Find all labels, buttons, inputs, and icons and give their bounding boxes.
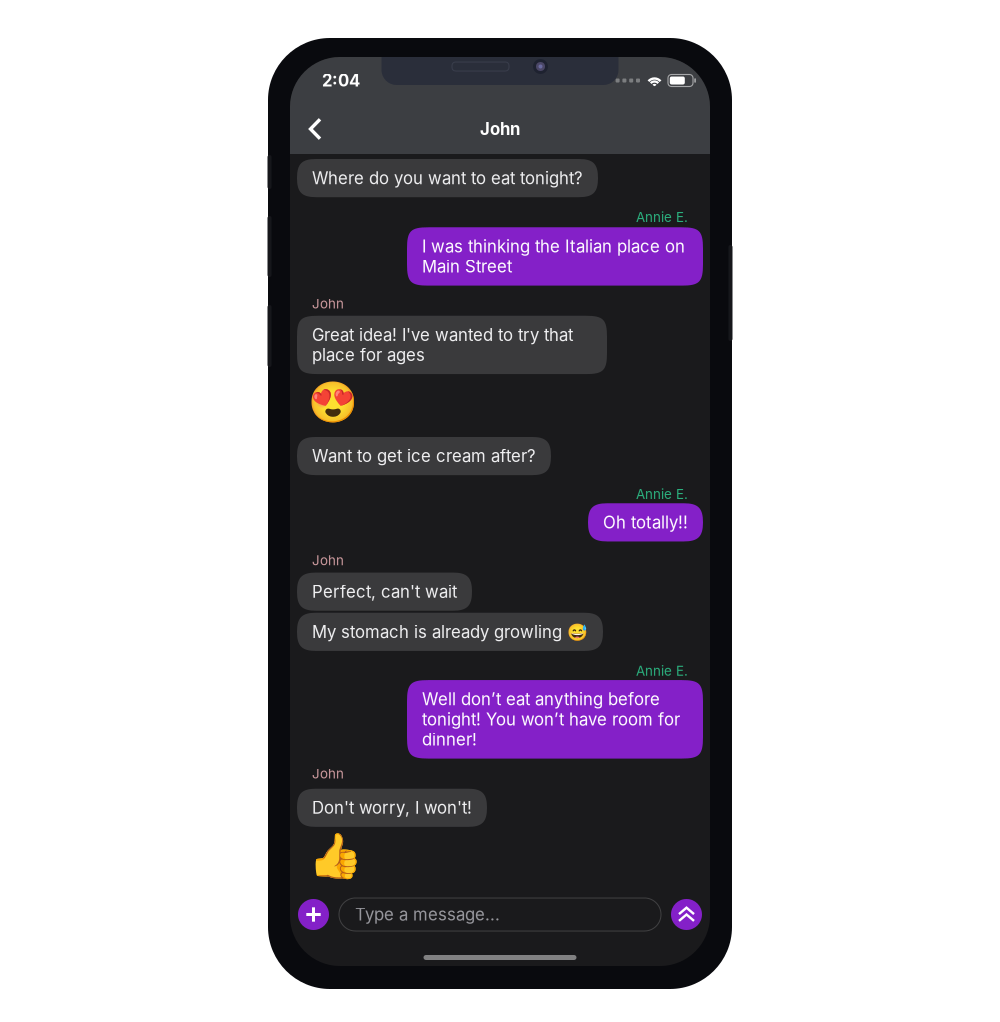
staticText: Annie E. — [636, 486, 688, 502]
staticText: I was thinking the Italian place on Main… — [422, 236, 685, 277]
button[interactable]: Add attachment — [298, 899, 329, 930]
staticText: Well don’t eat anything before tonight! … — [422, 689, 680, 750]
staticText: 😍 — [308, 379, 358, 426]
staticText: Annie E. — [636, 663, 688, 679]
staticText: Don't worry, I won't! — [312, 798, 472, 818]
staticText: Great idea! I've wanted to try that plac… — [312, 325, 573, 365]
staticText: Type a message... — [355, 904, 500, 925]
staticText: 2:04 — [322, 70, 360, 91]
staticText: John — [480, 119, 520, 139]
staticText: John — [312, 552, 344, 568]
staticText: Where do you want to eat tonight? — [312, 168, 583, 188]
button[interactable]: Back — [290, 104, 340, 154]
staticText: 👍 — [308, 830, 363, 881]
button[interactable]: Send — [671, 899, 702, 930]
staticText: Want to get ice cream after? — [312, 446, 536, 466]
staticText: Annie E. — [636, 209, 688, 225]
staticText: John — [312, 296, 344, 312]
staticText: Oh totally!! — [603, 512, 688, 532]
staticText: Perfect, can't wait — [312, 582, 457, 602]
staticText: John — [312, 766, 344, 782]
staticText: My stomach is already growling 😅 — [312, 622, 588, 642]
